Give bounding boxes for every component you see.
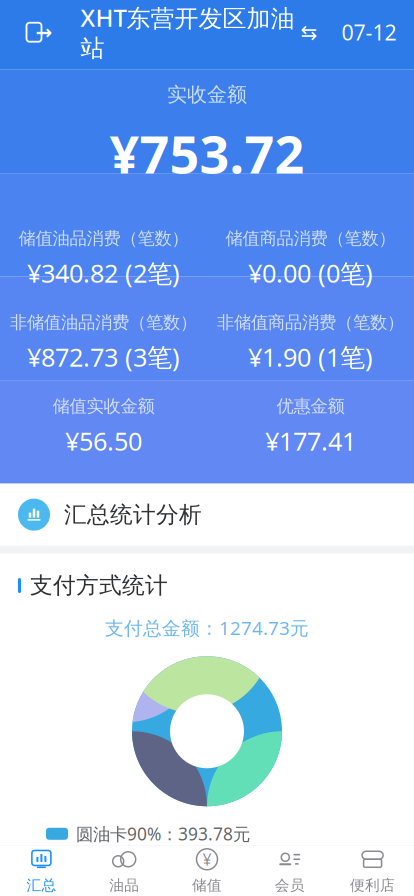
staticText: 油品 [109, 876, 139, 894]
staticText: XHT东营开发区加油站 [80, 1, 294, 63]
staticText: ¥56.50 [65, 424, 142, 458]
staticText: 储值商品消费（笔数） [225, 228, 395, 249]
staticText: 非储值油品消费（笔数） [10, 312, 197, 333]
staticText: 支付总金额：1274.73元 [105, 615, 309, 640]
staticText: 优惠金额 [276, 396, 344, 417]
staticText: 汇总 [26, 876, 56, 894]
staticText: ¥177.41 [265, 424, 356, 458]
staticText: 汇总统计分析 [64, 501, 202, 528]
staticText: ¥ [202, 849, 211, 870]
staticText: ⇆ [300, 21, 317, 44]
button[interactable]: 油品 [83, 846, 166, 896]
button[interactable]: 会员 [248, 846, 331, 896]
staticText: 07-12 [341, 18, 396, 46]
button[interactable]: 汇总统计分析 [0, 484, 414, 546]
button[interactable]: 07-12 [338, 10, 400, 54]
staticText: ¥0.00 (0笔) [248, 256, 373, 290]
button[interactable]: Sign out [14, 10, 60, 54]
staticText: 实收金额 [167, 82, 247, 107]
staticText: → [35, 21, 52, 44]
staticText: 储值实收金额 [52, 396, 154, 417]
staticText: ¥1.90 (1笔) [248, 340, 373, 374]
staticText: 储值 [192, 876, 222, 894]
staticText: 便利店 [350, 876, 395, 894]
staticText: ¥340.82 (2笔) [27, 256, 180, 290]
staticText: 圆油卡90%：393.78元 [76, 822, 250, 845]
button[interactable]: XHT东营开发区加油站 [74, 10, 323, 54]
staticText: ¥872.73 (3笔) [27, 340, 180, 374]
staticText: ¥753.72 [109, 119, 304, 188]
button[interactable]: 汇总 [0, 846, 83, 896]
button[interactable]: ¥ [166, 846, 248, 896]
staticText: 支付方式统计 [30, 572, 168, 599]
staticText: 非储值商品消费（笔数） [217, 312, 404, 333]
staticText: 储值油品消费（笔数） [18, 228, 188, 249]
staticText: 会员 [275, 876, 305, 894]
button[interactable]: 便利店 [331, 846, 414, 896]
